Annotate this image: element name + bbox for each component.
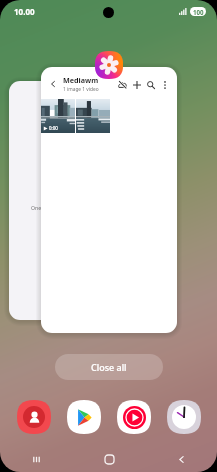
- button[interactable]: YouTube Music: [117, 400, 151, 434]
- staticText: Close all: [91, 361, 127, 373]
- button[interactable]: One UI Home: [9, 81, 133, 320]
- staticText: One UI Home: [31, 204, 65, 211]
- button[interactable]: Cloud sync off: [117, 79, 128, 90]
- staticText: 1 image 1 video: [63, 86, 99, 93]
- button[interactable]: Add: [131, 79, 142, 90]
- staticText: Mediawm: [63, 75, 99, 85]
- button[interactable]: Navigate up: [48, 79, 58, 89]
- button[interactable]: Contacts: [17, 400, 51, 434]
- button[interactable]: Clock: [167, 400, 201, 434]
- button[interactable]: Recents: [0, 446, 73, 472]
- button[interactable]: Back: [145, 446, 217, 472]
- staticText: 100: [193, 8, 204, 16]
- button[interactable]: Navigate up: [41, 67, 177, 333]
- button[interactable]: More options: [159, 79, 170, 90]
- button[interactable]: Gallery: [95, 51, 123, 79]
- button[interactable]: Play Store: [67, 400, 101, 434]
- button[interactable]: Close all: [55, 354, 163, 380]
- button[interactable]: Home: [73, 446, 145, 472]
- staticText: 0:00: [49, 125, 58, 131]
- button[interactable]: Search: [145, 79, 156, 90]
- staticText: 10.00: [14, 6, 35, 17]
